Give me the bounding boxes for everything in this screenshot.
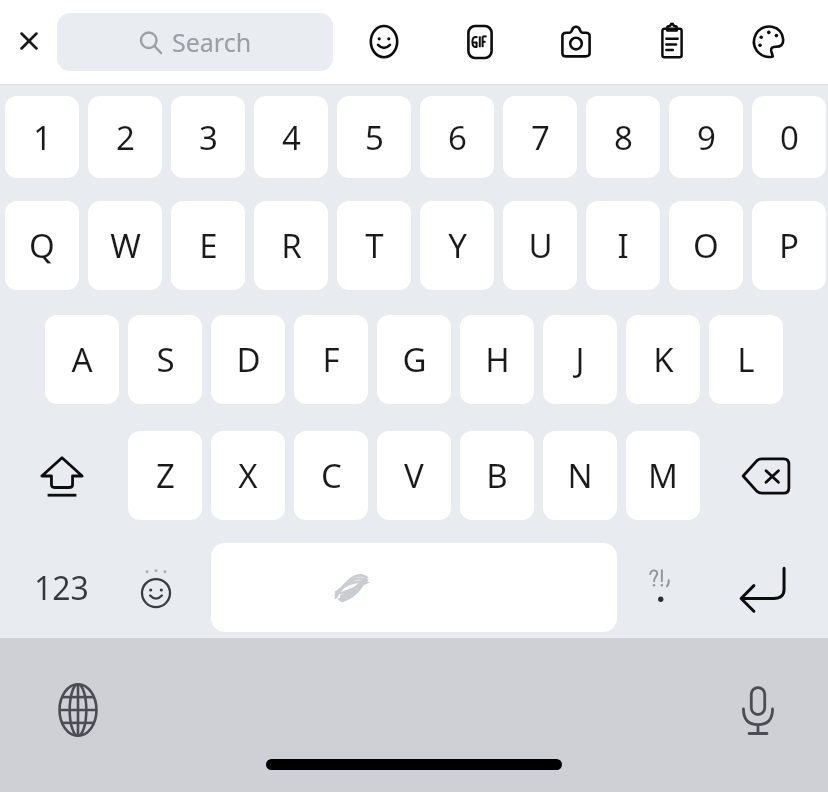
button[interactable]: Emoji [356,14,412,70]
button[interactable]: Search [57,13,333,71]
staticText: C [321,453,342,498]
button[interactable]: 8 [586,96,660,178]
staticText: 9 [697,115,716,160]
button[interactable] [211,543,617,632]
staticText: 6 [448,115,467,160]
button[interactable]: 7 [503,96,577,178]
staticText: W [110,223,141,268]
button[interactable]: D [211,315,285,404]
staticText: 3 [199,115,218,160]
staticText: O [693,223,719,268]
staticText: U [528,223,553,268]
button[interactable]: Q [5,201,79,290]
button[interactable]: W [88,201,162,290]
staticText: E [199,223,218,268]
staticText: H [485,337,510,382]
staticText: S [156,337,175,382]
staticText: 2 [116,115,135,160]
button[interactable]: N [543,431,617,520]
button[interactable]: 5 [337,96,411,178]
staticText: J [575,337,585,382]
staticText: 5 [365,115,384,160]
staticText: N [567,453,593,498]
button[interactable]: E [171,201,245,290]
button[interactable]: Voice input [718,670,798,750]
button[interactable]: Y [420,201,494,290]
button[interactable]: U [503,201,577,290]
button[interactable]: GIF [452,14,508,70]
button[interactable]: A [45,315,119,404]
staticText: 1 [33,115,52,160]
staticText: G [402,337,427,382]
staticText: D [236,337,261,382]
button[interactable]: V [377,431,451,520]
staticText: B [486,453,508,498]
button[interactable]: H [460,315,534,404]
staticText: Y [448,223,467,268]
staticText: V [404,453,424,498]
staticText: 4 [282,115,301,160]
button[interactable]: J [543,315,617,404]
button[interactable]: 1 [5,96,79,178]
staticText: M [648,453,678,498]
button[interactable]: 0 [752,96,826,178]
staticText: K [653,337,674,382]
staticText: T [365,223,384,268]
button[interactable]: 4 [254,96,328,178]
button[interactable]: Themes [740,14,796,70]
button[interactable]: 6 [420,96,494,178]
button[interactable]: Backspace [718,431,814,520]
button[interactable]: C [294,431,368,520]
staticText: Q [29,223,55,268]
button[interactable]: T [337,201,411,290]
button[interactable]: F [294,315,368,404]
button[interactable]: R [254,201,328,290]
staticText: X [238,453,258,498]
staticText: Search [172,25,252,59]
button[interactable]: Emoji [112,543,200,632]
staticText: 0 [780,115,799,160]
button[interactable]: S [128,315,202,404]
staticText: I [617,223,629,268]
button[interactable]: P [752,201,826,290]
staticText: 8 [614,115,633,160]
button[interactable]: Punctuation [620,543,706,632]
staticText: A [71,337,93,382]
button[interactable]: Close [2,14,56,68]
button[interactable]: Z [128,431,202,520]
button[interactable]: 3 [171,96,245,178]
button[interactable]: 123 [14,543,109,632]
staticText: 7 [531,115,550,160]
button[interactable]: O [669,201,743,290]
staticText: L [737,337,755,382]
button[interactable]: X [211,431,285,520]
button[interactable]: G [377,315,451,404]
button[interactable]: Enter [712,543,812,632]
button[interactable]: M [626,431,700,520]
button[interactable]: 2 [88,96,162,178]
button[interactable]: Clipboard [644,14,700,70]
button[interactable]: Camera [548,14,604,70]
button[interactable]: L [709,315,783,404]
staticText: F [322,337,340,382]
button[interactable]: Change language [38,670,118,750]
button[interactable]: 9 [669,96,743,178]
button[interactable]: I [586,201,660,290]
button[interactable]: Shift [14,431,109,520]
button[interactable]: B [460,431,534,520]
staticText: 123 [34,566,89,610]
staticText: R [281,223,302,268]
staticText: Z [156,453,175,498]
button[interactable]: K [626,315,700,404]
staticText: P [779,223,799,268]
